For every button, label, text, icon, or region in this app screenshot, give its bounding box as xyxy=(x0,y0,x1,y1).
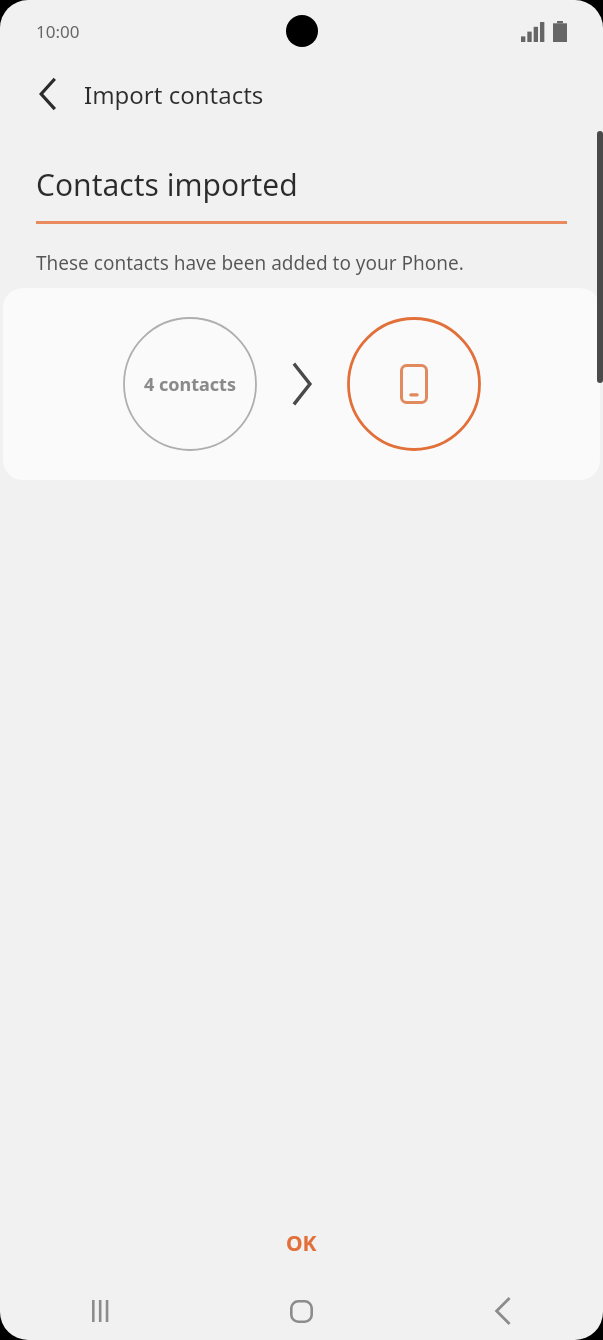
staticText: OK xyxy=(286,1229,317,1258)
staticText: Contacts imported xyxy=(36,164,298,205)
staticText: 4 contacts xyxy=(144,372,236,397)
staticText: These contacts have been added to your P… xyxy=(36,250,464,276)
button[interactable]: Back xyxy=(22,68,74,120)
staticText: 10:00 xyxy=(36,20,80,43)
button[interactable]: Back xyxy=(402,1282,603,1340)
button[interactable]: Recent apps xyxy=(0,1282,201,1340)
button[interactable]: OK xyxy=(0,1216,603,1270)
button[interactable]: Home xyxy=(201,1282,402,1340)
button[interactable]: 4 contacts xyxy=(3,288,600,480)
staticText: Import contacts xyxy=(84,78,264,111)
